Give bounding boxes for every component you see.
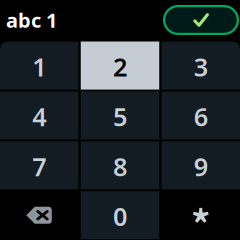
button[interactable]: 6	[161, 91, 240, 139]
button[interactable]: 0	[81, 191, 159, 239]
staticText: 0	[113, 199, 127, 233]
staticText: 4	[32, 100, 46, 133]
button[interactable]: 7	[0, 141, 78, 189]
staticText: 8	[113, 149, 127, 183]
button[interactable]: 1	[0, 41, 78, 90]
staticText: 7	[32, 149, 46, 183]
staticText: 5	[113, 100, 127, 133]
button[interactable]: Asterisk	[161, 191, 240, 239]
staticText: 6	[194, 100, 208, 133]
button[interactable]: 5	[81, 91, 159, 139]
button[interactable]: 2	[81, 41, 159, 90]
button[interactable]: 3	[161, 41, 240, 90]
button[interactable]: Done	[163, 5, 239, 35]
staticText: 2	[113, 50, 127, 83]
button[interactable]: 8	[81, 141, 159, 189]
staticText: 1	[32, 50, 46, 83]
button[interactable]: Delete	[0, 191, 78, 239]
button[interactable]: 9	[161, 141, 240, 189]
staticText: 9	[194, 149, 208, 183]
staticText: 3	[194, 50, 208, 83]
staticText: abc 1	[6, 7, 57, 33]
button[interactable]: 4	[0, 91, 78, 139]
